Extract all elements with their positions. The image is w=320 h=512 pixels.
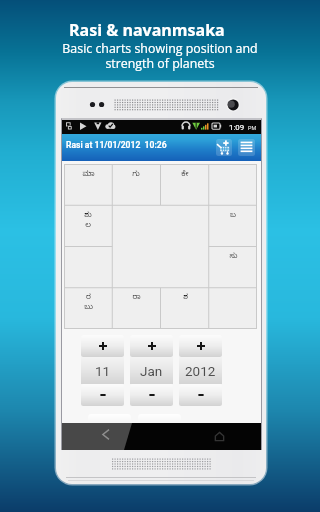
staticText: 1:09 [229,123,245,132]
button[interactable] [138,414,181,424]
staticText: ಬ [230,211,236,221]
staticText: Rasi & navanmsaka [69,19,225,41]
button[interactable]: Increase [81,335,124,357]
staticText: ಶು ಲ [84,211,92,231]
staticText: 11 [95,363,111,379]
staticText: ಕೇ [181,170,189,180]
button[interactable]: Increase [130,335,173,357]
staticText: ರಾ [132,293,141,303]
button[interactable]: Increase [179,335,222,357]
staticText: ರ ಬು [84,293,93,313]
button[interactable]: Back [62,423,130,450]
button[interactable]: Add to cart [216,139,232,156]
staticText: PM [248,125,257,131]
staticText: Jan [140,363,163,379]
button[interactable]: Decrease [130,384,173,406]
button[interactable]: Decrease [81,384,124,406]
button[interactable]: Menu [238,139,255,156]
staticText: Rasi at 11/01/2012 10:26 [66,140,167,150]
staticText: ಸು [229,252,238,262]
button[interactable] [88,414,131,424]
staticText: ಮಾ [82,170,95,180]
button[interactable]: Home [204,423,234,450]
button[interactable]: Decrease [179,384,222,406]
staticText: ಶ [183,293,188,303]
staticText: ಗು [132,170,140,180]
staticText: Basic charts showing position and streng… [0,40,320,71]
staticText: 2012 [185,363,216,379]
